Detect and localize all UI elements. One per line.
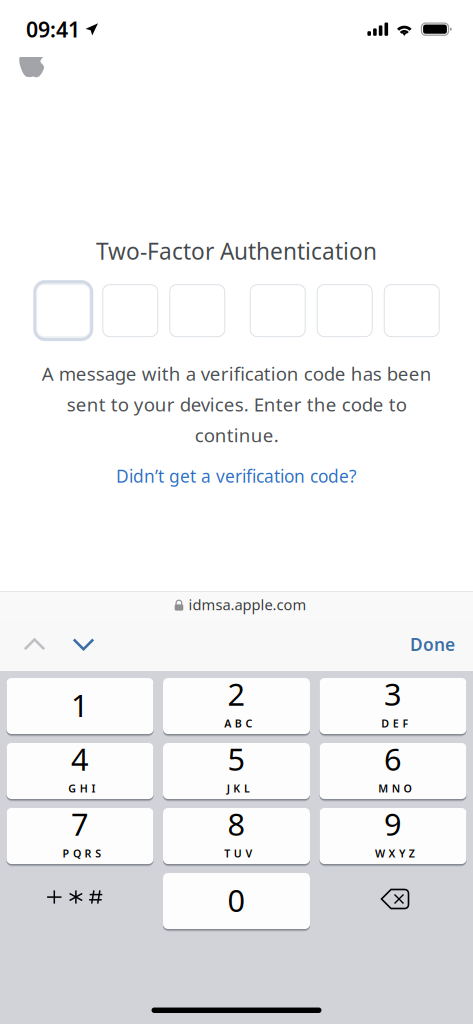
staticText: MNO bbox=[378, 781, 411, 795]
button[interactable]: 2 bbox=[163, 678, 310, 734]
staticText: 2 bbox=[227, 674, 245, 714]
button[interactable]: 1 bbox=[6, 678, 153, 734]
staticText: idmsa.apple.com bbox=[188, 595, 306, 614]
staticText: Didn’t get a verification code? bbox=[116, 464, 357, 487]
staticText: WXYZ bbox=[375, 846, 415, 860]
button[interactable]: 6 bbox=[319, 743, 466, 799]
button[interactable]: 5 bbox=[163, 743, 310, 799]
button[interactable]: Previous field bbox=[10, 617, 59, 671]
staticText: 4 bbox=[71, 739, 89, 779]
staticText: 8 bbox=[227, 804, 245, 844]
staticText: 5 bbox=[227, 739, 245, 779]
button[interactable]: Code digit 2 bbox=[102, 284, 158, 337]
staticText: 09:41 bbox=[26, 15, 80, 43]
button[interactable]: 8 bbox=[163, 808, 310, 864]
button[interactable]: Didn’t get a verification code? bbox=[116, 464, 357, 487]
staticText: TUV bbox=[224, 846, 252, 860]
button[interactable]: Code digit 1 bbox=[33, 280, 93, 341]
button[interactable]: Plus, star, pound bbox=[6, 874, 153, 928]
button[interactable]: 7 bbox=[6, 808, 153, 864]
staticText: 3 bbox=[384, 674, 402, 714]
button[interactable]: 9 bbox=[319, 808, 466, 864]
button[interactable]: Done bbox=[375, 617, 455, 671]
staticText: 1 bbox=[71, 685, 89, 725]
button[interactable]: 3 bbox=[319, 678, 466, 734]
staticText: ABC bbox=[224, 716, 252, 730]
staticText: 9 bbox=[384, 804, 402, 844]
button[interactable]: Code digit 6 bbox=[384, 284, 440, 337]
staticText: Done bbox=[410, 633, 455, 656]
button[interactable]: Code digit 4 bbox=[250, 284, 306, 337]
staticText: A message with a verification code has b… bbox=[41, 361, 431, 447]
staticText: PQRS bbox=[62, 846, 101, 860]
staticText: 7 bbox=[71, 804, 89, 844]
staticText: Two-Factor Authentication bbox=[96, 236, 377, 266]
button[interactable]: 4 bbox=[6, 743, 153, 799]
button[interactable]: Next field bbox=[59, 617, 108, 671]
button[interactable]: Delete bbox=[319, 874, 466, 928]
button[interactable]: 0 bbox=[163, 873, 310, 929]
staticText: DEF bbox=[381, 716, 408, 730]
staticText: GHI bbox=[68, 781, 95, 795]
button[interactable]: Code digit 3 bbox=[169, 284, 225, 337]
button[interactable]: Code digit 5 bbox=[317, 284, 373, 337]
staticText: 0 bbox=[227, 880, 245, 920]
staticText: 6 bbox=[384, 739, 402, 779]
staticText: JKL bbox=[227, 781, 250, 795]
